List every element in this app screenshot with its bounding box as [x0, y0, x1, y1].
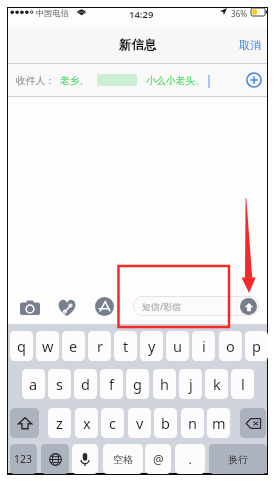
staticText: f	[109, 374, 114, 394]
staticText: g	[133, 374, 142, 394]
button[interactable]: j	[179, 369, 202, 399]
staticText: b	[161, 413, 170, 433]
button[interactable]: Shift	[10, 408, 39, 438]
button[interactable]: d	[74, 369, 97, 399]
staticText: @	[153, 451, 164, 467]
staticText: 小么小老头、	[146, 75, 205, 87]
staticText: 取消	[239, 38, 261, 52]
staticText: s	[56, 374, 63, 394]
button[interactable]: Change keyboard	[41, 444, 69, 474]
staticText: ．	[184, 452, 196, 467]
staticText: m	[212, 413, 226, 433]
button[interactable]: 短信/彩信	[133, 296, 259, 316]
staticText: t	[123, 336, 129, 356]
staticText: 123	[14, 452, 33, 466]
staticText: 新信息	[119, 37, 157, 53]
staticText: r	[97, 336, 103, 356]
button[interactable]: n	[181, 408, 204, 438]
staticText: w	[42, 336, 54, 356]
staticText: q	[17, 336, 26, 356]
button[interactable]: l	[231, 369, 254, 399]
button[interactable]: g	[126, 369, 149, 399]
button[interactable]: z	[48, 408, 71, 438]
button[interactable]: Add contact	[246, 72, 262, 88]
button[interactable]: 换行	[209, 444, 267, 474]
button[interactable]: c	[101, 408, 124, 438]
button[interactable]: App Store	[94, 296, 114, 316]
button[interactable]: 取消	[233, 31, 267, 59]
button[interactable]: y	[140, 331, 163, 361]
button[interactable]: w	[36, 331, 59, 361]
button[interactable]: Send	[240, 298, 257, 315]
staticText: j	[189, 374, 193, 394]
button[interactable]: i	[192, 331, 215, 361]
button[interactable]: o	[219, 331, 242, 361]
button[interactable]: 123	[10, 444, 37, 474]
staticText: 换行	[228, 453, 248, 466]
button[interactable]: Backspace	[240, 408, 266, 438]
button[interactable]: u	[166, 331, 189, 361]
staticText: v	[136, 413, 144, 433]
staticText: 14:29	[129, 8, 154, 21]
staticText: y	[148, 336, 156, 356]
staticText: 收件人：	[16, 75, 56, 87]
button[interactable]: @	[145, 444, 171, 474]
staticText: 短信/彩信	[142, 300, 182, 312]
staticText: i	[202, 336, 206, 356]
button[interactable]: h	[153, 369, 176, 399]
staticText: h	[160, 374, 169, 394]
staticText: x	[83, 413, 91, 433]
button[interactable]: r	[88, 331, 111, 361]
staticText: z	[56, 413, 63, 433]
button[interactable]: ．	[175, 444, 205, 474]
button[interactable]: s	[48, 369, 71, 399]
button[interactable]: Digital Touch	[56, 295, 78, 317]
button[interactable]: 空格	[103, 444, 143, 474]
staticText: p	[252, 336, 261, 356]
staticText: a	[29, 374, 38, 394]
staticText: n	[188, 413, 197, 433]
button[interactable]: Dictation	[72, 444, 98, 474]
staticText: u	[173, 336, 182, 356]
button[interactable]: q	[10, 331, 33, 361]
staticText: 老乡、	[60, 75, 90, 87]
button[interactable]: b	[154, 408, 177, 438]
button[interactable]: k	[205, 369, 228, 399]
staticText: o	[226, 336, 235, 356]
button[interactable]: x	[75, 408, 98, 438]
button[interactable]: p	[245, 331, 268, 361]
staticText: 空格	[113, 453, 133, 466]
staticText: 中国电信	[36, 8, 69, 18]
staticText: d	[81, 374, 90, 394]
button[interactable]: Camera	[19, 295, 41, 317]
staticText: k	[213, 374, 221, 394]
button[interactable]: e	[62, 331, 85, 361]
button[interactable]: f	[100, 369, 123, 399]
button[interactable]: a	[22, 369, 45, 399]
button[interactable]: v	[128, 408, 151, 438]
staticText: 36%	[231, 8, 248, 19]
staticText: e	[69, 336, 78, 356]
button[interactable]: m	[207, 408, 230, 438]
staticText: l	[241, 374, 245, 394]
staticText: c	[109, 413, 116, 433]
button[interactable]: t	[114, 331, 137, 361]
